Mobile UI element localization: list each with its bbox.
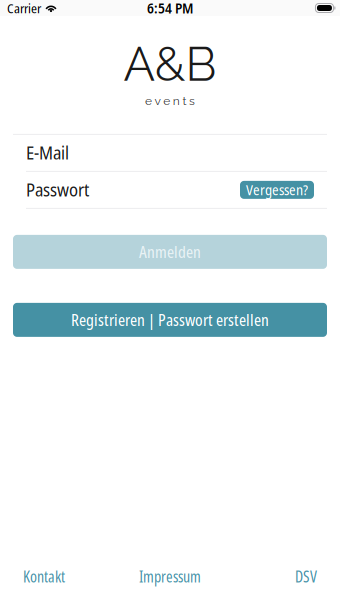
staticText: Carrier (7, 0, 41, 17)
staticText: Vergessen? (246, 180, 308, 199)
button[interactable]: Registrieren | Passwort erstellen (13, 303, 327, 337)
button[interactable]: Impressum (121, 566, 219, 587)
staticText: Impressum (139, 566, 201, 587)
staticText: Kontakt (23, 566, 65, 587)
staticText: E-Mail (26, 141, 69, 165)
staticText: DSV (295, 566, 317, 587)
staticText: events (145, 94, 195, 108)
staticText: 6:54 PM (147, 0, 193, 18)
staticText: A&B (123, 37, 216, 92)
button[interactable]: DSV (219, 566, 317, 587)
button[interactable]: Vergessen? (240, 181, 314, 199)
button[interactable]: Anmelden (13, 235, 327, 269)
staticText: Anmelden (139, 241, 201, 263)
staticText: Passwort (26, 178, 89, 202)
staticText: Registrieren | Passwort erstellen (71, 309, 269, 331)
button[interactable]: Kontakt (23, 566, 121, 587)
